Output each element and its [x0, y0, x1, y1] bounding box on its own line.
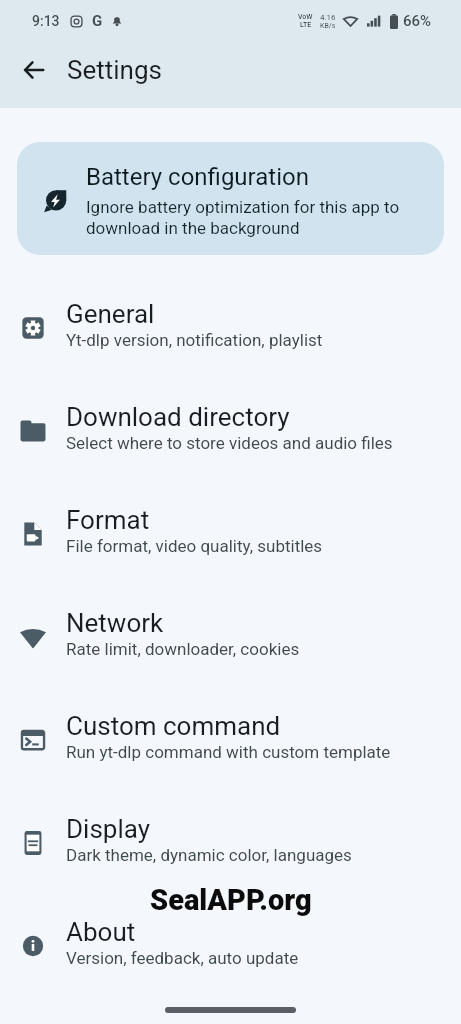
- staticText: LTE: [300, 21, 312, 29]
- staticText: Dark theme, dynamic color, languages: [66, 845, 352, 865]
- staticText: Yt-dlp version, notification, playlist: [66, 330, 323, 350]
- staticText: Select where to store videos and audio f…: [66, 433, 393, 453]
- button[interactable]: Custom command: [0, 684, 461, 787]
- button[interactable]: About: [0, 890, 461, 993]
- staticText: Display: [66, 814, 150, 844]
- button[interactable]: Display: [0, 787, 461, 890]
- staticText: General: [66, 299, 155, 329]
- button[interactable]: Battery configuration: [17, 142, 444, 255]
- staticText: 9:13: [32, 13, 60, 29]
- staticText: Custom command: [66, 711, 281, 741]
- staticText: KB/s: [320, 22, 336, 30]
- staticText: G: [92, 12, 103, 30]
- staticText: VoW: [298, 13, 313, 21]
- staticText: Run yt-dlp command with custom template: [66, 742, 391, 762]
- button[interactable]: Format: [0, 478, 461, 581]
- button[interactable]: Network: [0, 581, 461, 684]
- button[interactable]: General: [0, 272, 461, 375]
- staticText: Battery configuration: [86, 163, 309, 191]
- staticText: SealAPP.org: [150, 883, 312, 917]
- staticText: Ignore battery optimization for this app…: [86, 197, 428, 238]
- staticText: Download directory: [66, 402, 290, 432]
- staticText: Rate limit, downloader, cookies: [66, 639, 300, 659]
- button[interactable]: Back: [10, 46, 57, 93]
- staticText: File format, video quality, subtitles: [66, 536, 323, 556]
- button[interactable]: Download directory: [0, 375, 461, 478]
- staticText: 4.16: [320, 13, 336, 22]
- staticText: About: [66, 917, 136, 947]
- staticText: Settings: [67, 55, 162, 85]
- staticText: Network: [66, 608, 164, 638]
- staticText: Version, feedback, auto update: [66, 948, 299, 968]
- staticText: 66%: [403, 12, 432, 30]
- staticText: Format: [66, 505, 150, 535]
